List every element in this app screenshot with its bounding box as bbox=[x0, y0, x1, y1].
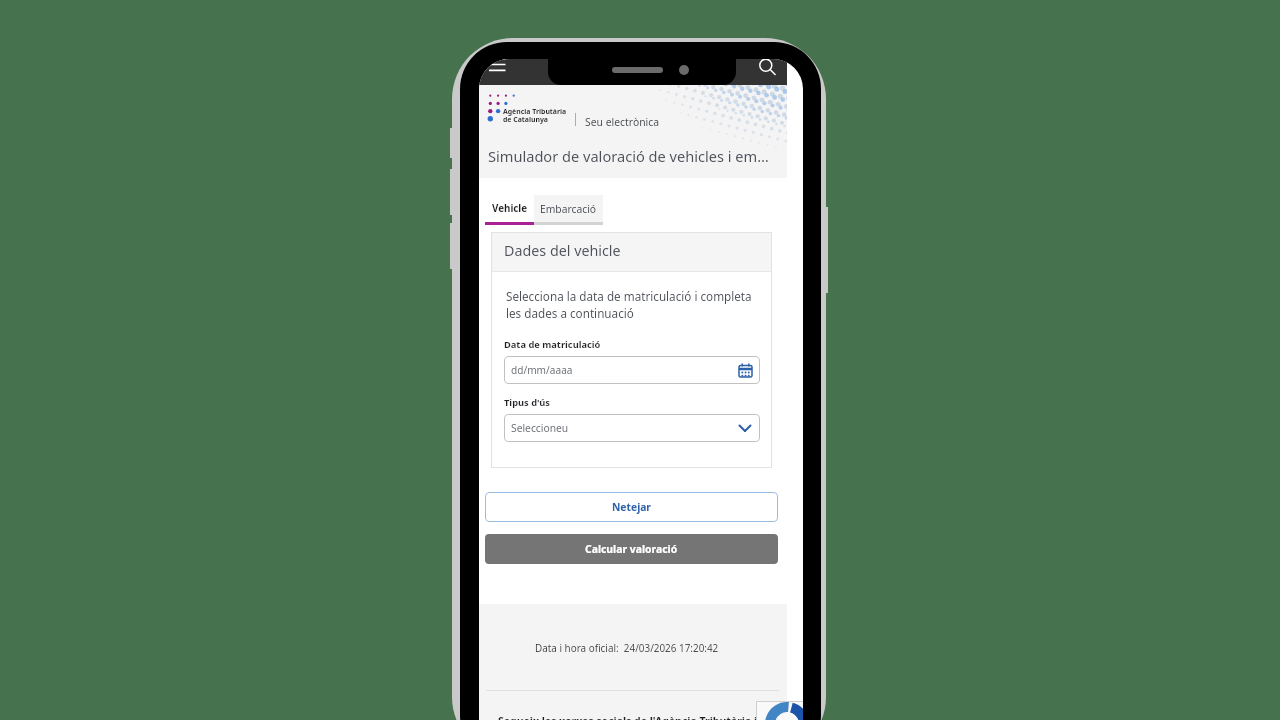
staticText: Vehicle bbox=[492, 202, 528, 215]
staticText: Simulador de valoració de vehicles i em… bbox=[488, 146, 769, 166]
staticText: Netejar bbox=[612, 500, 651, 514]
button[interactable]: Vehicle bbox=[485, 195, 534, 225]
button[interactable]: Menu bbox=[482, 59, 512, 76]
button[interactable]: Calcular valoració bbox=[485, 534, 778, 564]
staticText: Tipus d'ús bbox=[504, 396, 550, 409]
staticText: dd/mm/aaaa bbox=[511, 363, 573, 377]
staticText: Seu electrònica bbox=[585, 115, 660, 129]
button[interactable]: dd/mm/aaaa bbox=[504, 356, 760, 384]
staticText: Segueix les xarxes socials de l'Agència … bbox=[498, 714, 758, 720]
staticText: Calcular valoració bbox=[585, 542, 678, 556]
button[interactable]: Seleccioneu bbox=[504, 414, 760, 442]
staticText: Embarcació bbox=[540, 202, 597, 216]
staticText: de Catalunya bbox=[503, 115, 549, 124]
staticText: Agència Tributària bbox=[503, 107, 567, 116]
staticText: les dades a continuació bbox=[506, 305, 634, 321]
button[interactable]: Netejar bbox=[485, 492, 778, 522]
staticText: Dades del vehicle bbox=[504, 241, 621, 260]
staticText: Data de matriculació bbox=[504, 338, 601, 351]
staticText: Seleccioneu bbox=[511, 421, 569, 435]
button[interactable]: Embarcació bbox=[534, 195, 603, 225]
staticText: Selecciona la data de matriculació i com… bbox=[506, 288, 752, 304]
staticText: Data i hora oficial: 24/03/2026 17:20:42 bbox=[535, 641, 719, 654]
button[interactable]: Search bbox=[751, 59, 781, 76]
